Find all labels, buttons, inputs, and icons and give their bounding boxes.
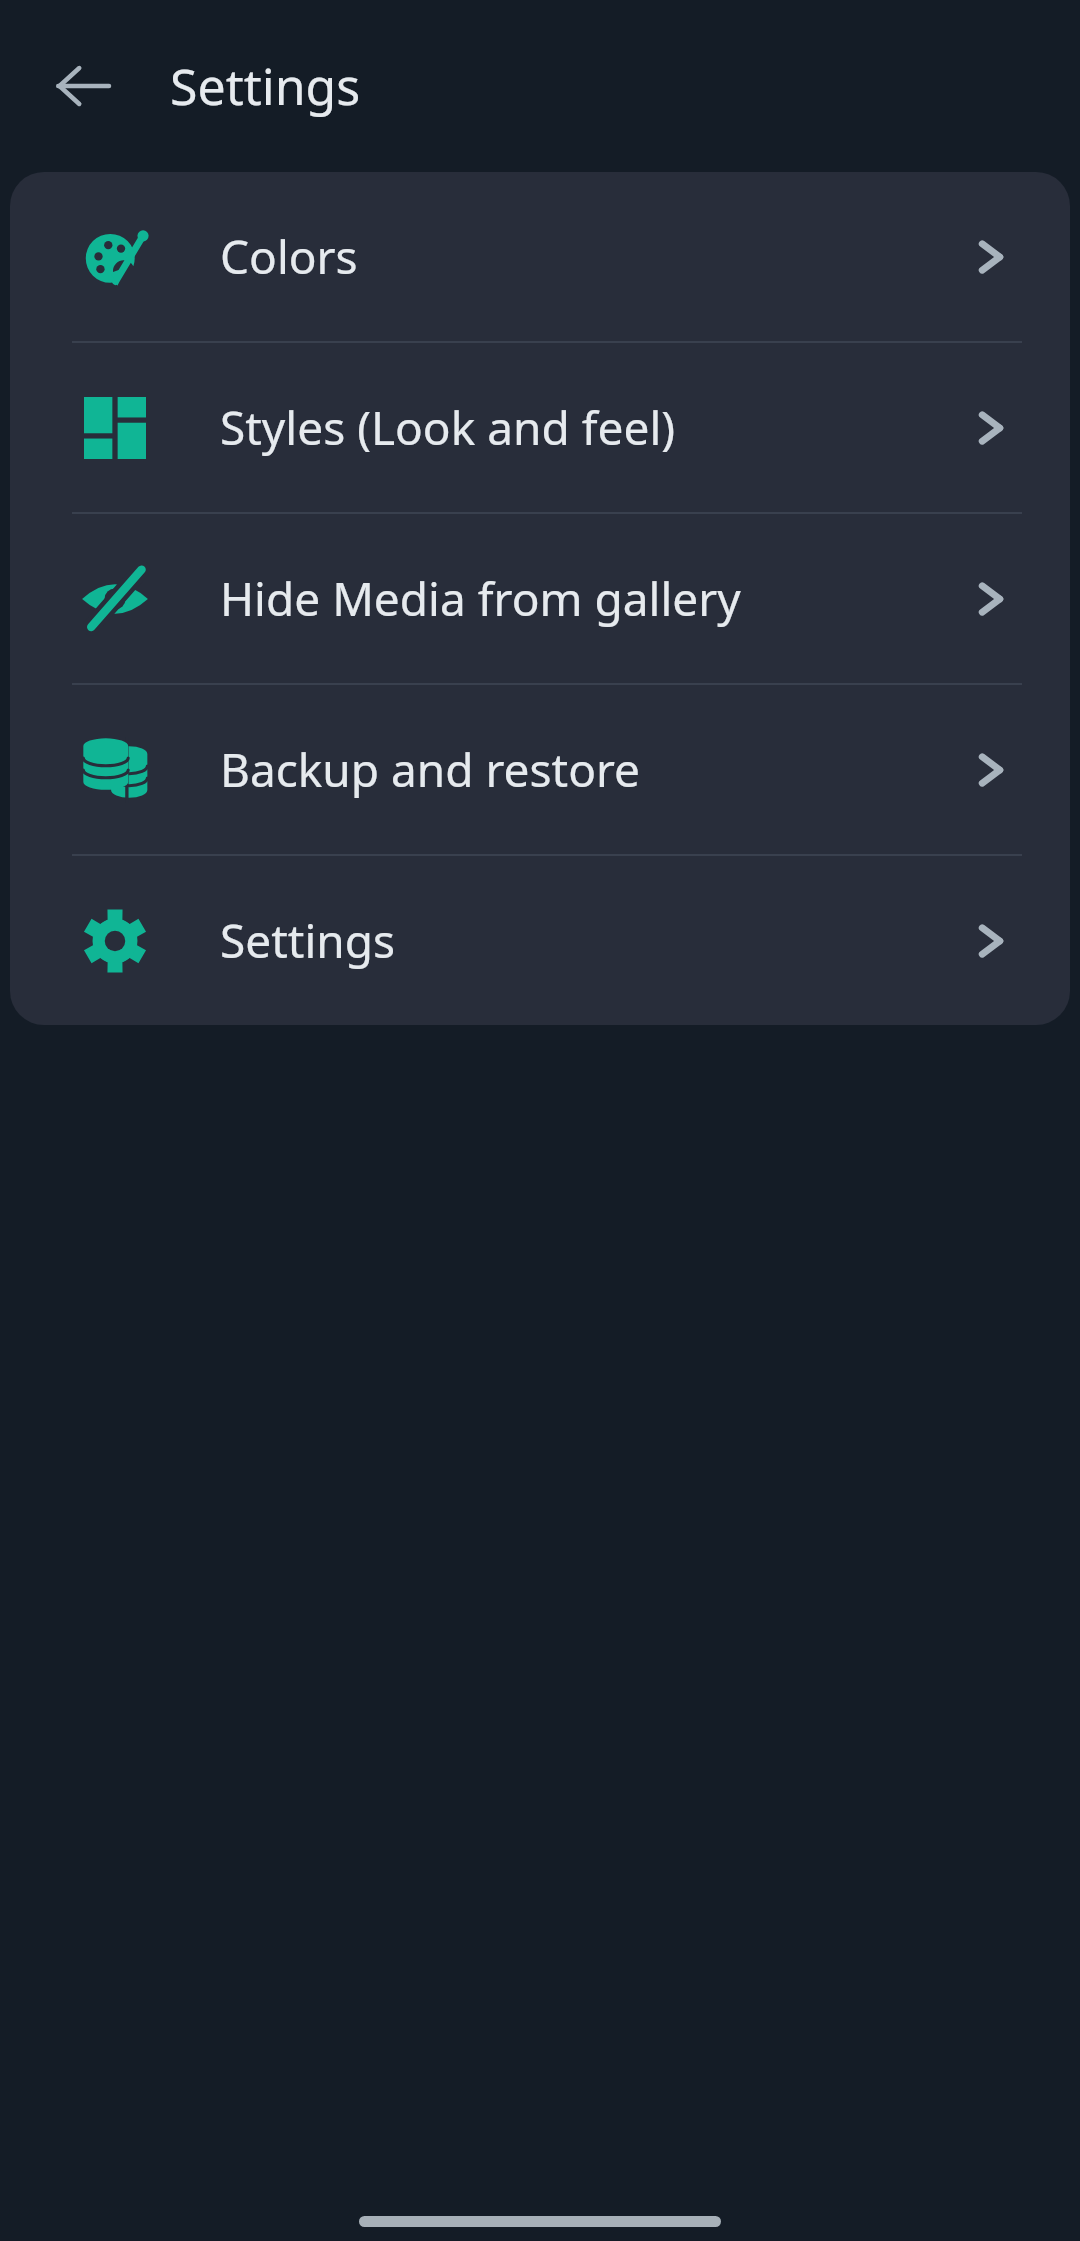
button[interactable]: Styles (Look and feel)	[10, 343, 1070, 512]
staticText: Settings	[170, 52, 361, 120]
button[interactable]: Hide Media from gallery	[10, 514, 1070, 683]
staticText: Settings	[220, 909, 396, 972]
staticText: Colors	[220, 225, 358, 288]
staticText: Hide Media from gallery	[220, 567, 741, 630]
button[interactable]: Colors	[10, 172, 1070, 341]
button[interactable]: Backup and restore	[10, 685, 1070, 854]
button[interactable]: Settings	[10, 856, 1070, 1025]
staticText: Backup and restore	[220, 738, 641, 801]
staticText: Styles (Look and feel)	[220, 396, 676, 459]
button[interactable]: Back	[40, 43, 126, 129]
